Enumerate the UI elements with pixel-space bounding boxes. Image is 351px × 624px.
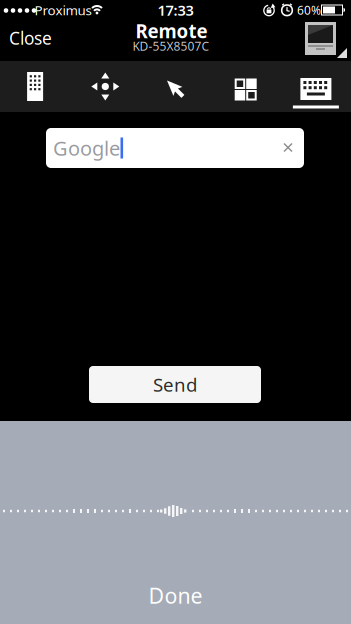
button[interactable]: TV screen preview [303, 21, 347, 58]
staticText: KD-55X8507C [132, 38, 209, 54]
staticText: Done [148, 581, 202, 610]
button[interactable]: Send [89, 366, 261, 403]
staticText: 60% [297, 2, 321, 18]
staticText: Close [9, 26, 52, 49]
button[interactable]: Clear text [273, 132, 303, 162]
staticText: Google [53, 135, 120, 161]
staticText: 17:33 [157, 0, 193, 20]
staticText: Remote [135, 19, 207, 43]
button[interactable]: Close [9, 18, 69, 58]
staticText: Send [153, 372, 197, 397]
staticText: Proximus [34, 1, 91, 19]
button[interactable]: Apps [211, 61, 281, 112]
button[interactable]: Remote control [0, 61, 70, 112]
button[interactable]: Done [125, 580, 225, 610]
button[interactable]: Directional pad [70, 61, 140, 112]
button[interactable]: Keyboard [281, 61, 351, 112]
button[interactable]: Pointer [140, 61, 210, 112]
